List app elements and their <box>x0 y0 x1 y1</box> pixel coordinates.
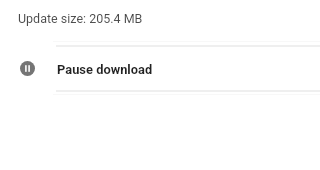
staticText: Update size: 205.4 MB <box>18 11 143 26</box>
staticText: Pause download <box>57 62 153 77</box>
button[interactable]: Pause download <box>0 47 320 90</box>
other: Pause download <box>20 61 35 76</box>
